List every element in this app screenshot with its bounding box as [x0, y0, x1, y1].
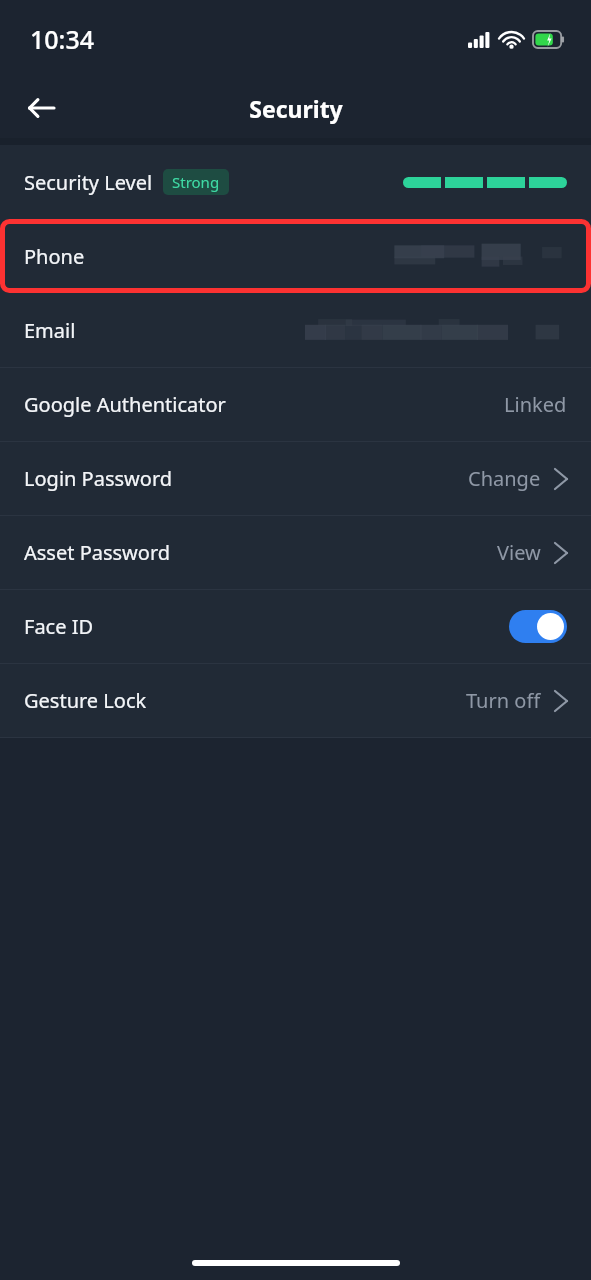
staticText: Asset Password — [24, 539, 171, 566]
staticText: Linked — [504, 391, 567, 418]
staticText: Email — [24, 317, 76, 344]
button[interactable]: Face ID — [0, 590, 591, 663]
staticText: Google Authenticator — [24, 391, 226, 418]
staticText: Phone — [24, 243, 85, 270]
button[interactable]: Security Level — [0, 145, 591, 219]
staticText: Turn off — [466, 687, 541, 714]
staticText: View — [497, 539, 541, 566]
staticText: Face ID — [24, 613, 94, 640]
staticText: Strong — [172, 172, 220, 192]
button[interactable]: Asset Password — [0, 516, 591, 589]
staticText: Security Level — [24, 169, 153, 196]
button[interactable]: Google Authenticator — [0, 368, 591, 441]
button[interactable]: Email — [0, 293, 591, 367]
staticText: Gesture Lock — [24, 687, 147, 714]
staticText: 10:34 — [30, 22, 95, 56]
button[interactable]: Gesture Lock — [0, 664, 591, 737]
button[interactable]: Back — [14, 81, 68, 135]
button[interactable]: Phone — [0, 219, 591, 293]
staticText: Security — [249, 93, 343, 124]
staticText: Login Password — [24, 465, 173, 492]
button[interactable]: Login Password — [0, 442, 591, 515]
button[interactable]: Face ID toggle — [509, 610, 567, 643]
staticText: Change — [468, 465, 541, 492]
